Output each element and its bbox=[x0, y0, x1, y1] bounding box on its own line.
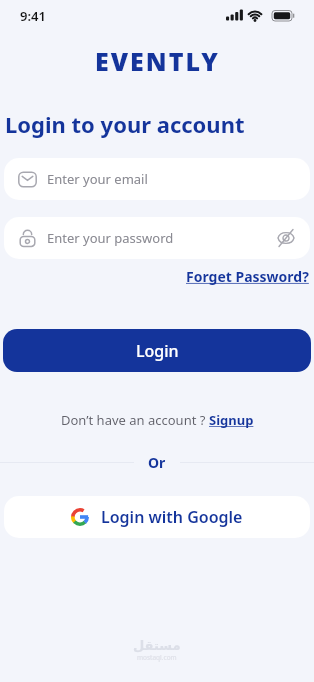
staticText: Login bbox=[136, 340, 179, 362]
button[interactable]: Enter your password bbox=[4, 217, 310, 259]
staticText: mostaql.com bbox=[137, 653, 177, 662]
staticText: مستقل bbox=[133, 638, 181, 653]
button[interactable]: Login with Google bbox=[4, 496, 310, 538]
button[interactable]: Forget Password? bbox=[186, 267, 309, 286]
button[interactable]: Login bbox=[3, 329, 311, 372]
button[interactable]: Enter your email bbox=[4, 158, 310, 200]
staticText: Or bbox=[148, 453, 166, 472]
staticText: Enter your email bbox=[47, 170, 148, 188]
button[interactable]: Signup bbox=[209, 411, 254, 429]
staticText: 9:41 bbox=[20, 7, 46, 25]
staticText: Login with Google bbox=[101, 506, 243, 528]
staticText: Enter your password bbox=[47, 229, 174, 247]
staticText: Don’t have an account ? bbox=[61, 411, 209, 429]
staticText: EVENTLY bbox=[95, 44, 220, 78]
staticText: Login to your account bbox=[5, 109, 245, 139]
